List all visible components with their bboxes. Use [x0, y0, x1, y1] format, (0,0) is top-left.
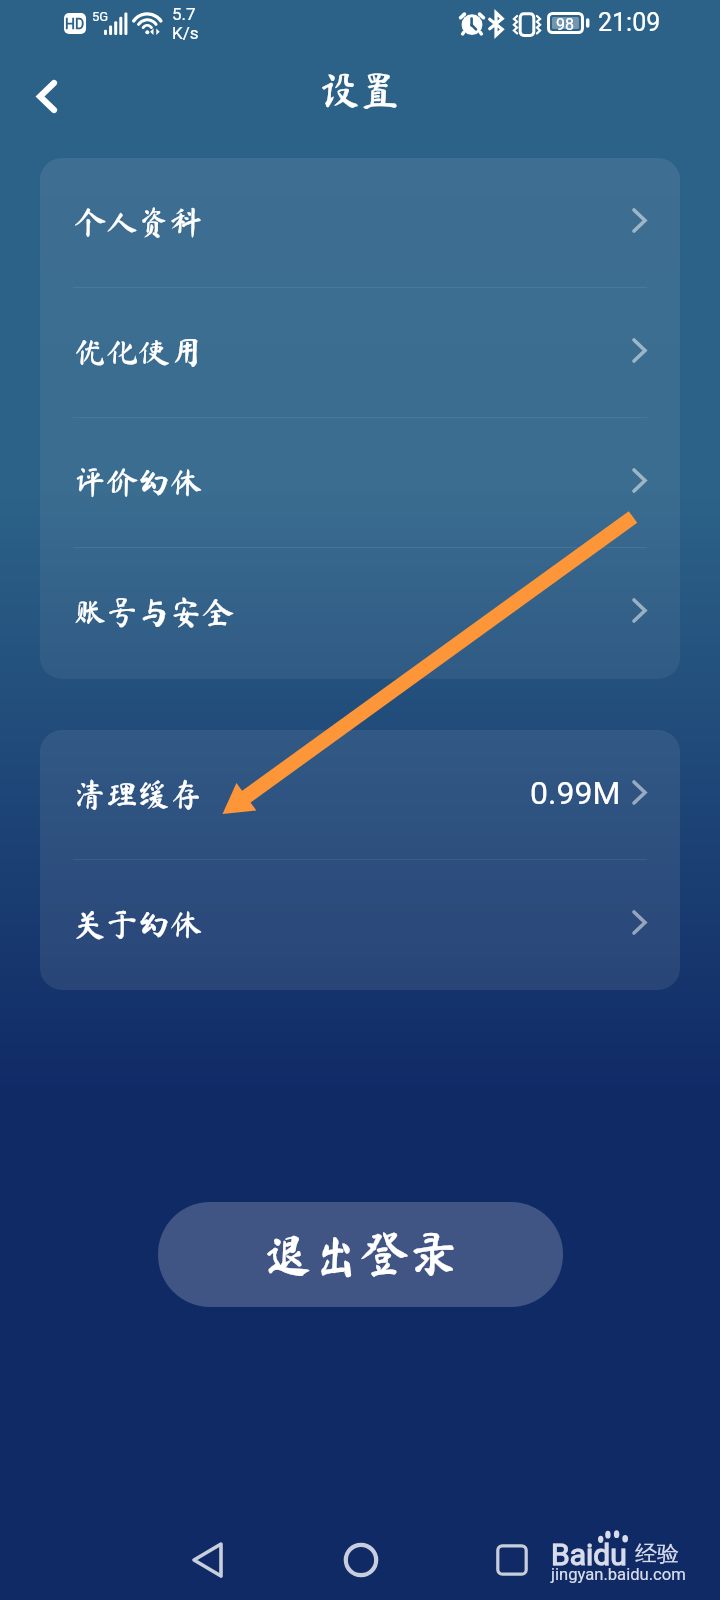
staticText: 账号与安全 — [74, 596, 235, 628]
staticText: 0.99M — [530, 774, 621, 812]
staticText: 经验 — [635, 1540, 679, 1568]
button[interactable]: 优化使用 — [40, 288, 680, 418]
staticText: K/s — [172, 23, 199, 43]
button[interactable]: Recents — [476, 1524, 548, 1596]
staticText: 优化使用 — [74, 336, 203, 368]
staticText: 21:09 — [598, 8, 661, 37]
button[interactable]: 个人资料 — [40, 158, 680, 288]
button[interactable]: 退出登录 — [158, 1202, 563, 1307]
button[interactable]: Home — [325, 1524, 397, 1596]
button[interactable]: Back — [14, 63, 80, 129]
button[interactable]: Back — [171, 1524, 243, 1596]
staticText: jingyan.baidu.com — [551, 1565, 686, 1584]
staticText: 设置 — [320, 70, 400, 110]
staticText: 5.7 — [172, 4, 196, 24]
staticText: Baidu — [551, 1537, 627, 1572]
staticText: HD — [65, 16, 85, 32]
button[interactable]: 评价幻休 — [40, 418, 680, 548]
button[interactable]: 账号与安全 — [40, 548, 680, 678]
staticText: 清理缓存 — [74, 778, 203, 810]
staticText: 5G — [92, 9, 109, 24]
staticText: 个人资料 — [74, 206, 203, 238]
staticText: 退出登录 — [262, 1229, 459, 1278]
staticText: 评价幻休 — [74, 466, 203, 498]
staticText: 关于幻休 — [74, 908, 203, 940]
button[interactable]: 清理缓存 — [40, 730, 680, 860]
staticText: 98 — [556, 15, 574, 34]
button[interactable]: 关于幻休 — [40, 860, 680, 990]
